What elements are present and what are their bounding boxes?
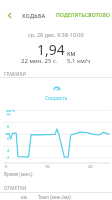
button[interactable]: ГОТОВО [87,8,112,23]
staticText: 5,1 км/ч [67,57,91,65]
staticText: 8 [7,124,10,129]
staticText: ГРАФИКИ [4,71,27,77]
staticText: 10 [6,112,11,117]
staticText: 1,94 [37,40,65,59]
staticText: км [21,194,27,200]
staticText: ГОТОВО [89,12,111,19]
staticText: Темп (мин./км) [38,194,71,200]
button[interactable]: ПОДЕЛИТЬСЯ [54,8,94,23]
staticText: ХОДЬБА [22,12,46,19]
staticText: км/ч [6,108,16,113]
staticText: 22 мин. 25 с. [21,57,58,65]
staticText: Скорость [45,95,68,102]
staticText: 4 [7,148,10,153]
staticText: Время (мин.) [4,171,33,177]
staticText: ПОДЕЛИТЬСЯ [56,12,92,19]
button[interactable]: Back [1,7,17,23]
button[interactable]: Скорость [37,84,76,103]
staticText: 10 [45,164,50,169]
staticText: 0 [5,164,8,169]
staticText: 20 [88,164,93,169]
staticText: ОТМЕТКИ [4,185,27,191]
staticText: ср, 28 дек, 9:38-10:00 [28,31,84,38]
staticText: 2 [7,155,10,160]
staticText: 6 [7,136,10,141]
staticText: км [67,49,76,58]
